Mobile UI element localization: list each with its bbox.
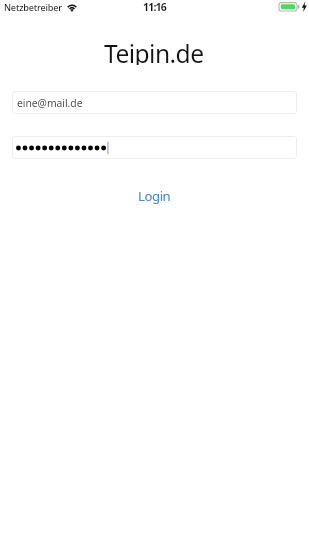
button[interactable]: eine@mail.de: [12, 91, 297, 114]
other: Battery charging: [0, 0, 309, 18]
staticText: 11:16: [143, 0, 166, 14]
staticText: Teipin.de: [104, 37, 204, 65]
staticText: eine@mail.de: [17, 96, 83, 110]
staticText: Login: [138, 187, 171, 205]
button[interactable]: Login: [0, 186, 309, 206]
other: Wi-Fi: [65, 0, 79, 14]
button[interactable]: [12, 136, 297, 159]
staticText: Netzbetreiber: [4, 1, 62, 13]
